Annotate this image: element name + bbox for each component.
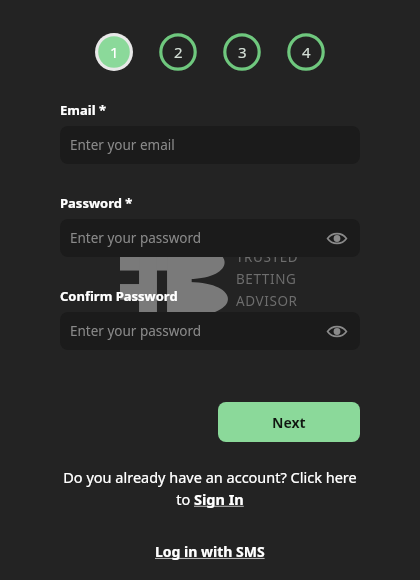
staticText: TRUSTED [236, 248, 299, 266]
staticText: Password * [60, 194, 133, 212]
staticText: 2 [174, 42, 183, 62]
button[interactable]: Show password [324, 318, 350, 344]
staticText: Enter your email [70, 136, 175, 154]
button[interactable]: Enter your password [60, 312, 360, 350]
button[interactable]: Next [218, 402, 360, 442]
staticText: Log in with SMS [155, 542, 265, 561]
staticText: Email * [60, 101, 106, 119]
button[interactable]: Log in with SMS [155, 542, 265, 561]
staticText: Confirm Password [60, 287, 178, 305]
staticText: Enter your password [70, 229, 202, 247]
button[interactable]: Enter your password [60, 219, 360, 257]
staticText: Do you already have an account? Click he… [60, 467, 360, 509]
button[interactable]: Enter your email [60, 126, 360, 164]
staticText: BETTING [236, 270, 297, 288]
button[interactable]: 1 [95, 33, 133, 71]
button[interactable]: 3 [223, 33, 261, 71]
button[interactable]: 2 [159, 33, 197, 71]
button[interactable]: Show password [324, 225, 350, 251]
button[interactable]: Do you already have an account? Click he… [60, 467, 360, 509]
staticText: ADVISOR [236, 292, 298, 310]
staticText: 3 [238, 42, 247, 62]
staticText: Enter your password [70, 322, 202, 340]
staticText: Next [272, 413, 306, 432]
button[interactable]: 4 [287, 33, 325, 71]
staticText: 1 [110, 42, 119, 62]
staticText: 4 [302, 42, 311, 62]
